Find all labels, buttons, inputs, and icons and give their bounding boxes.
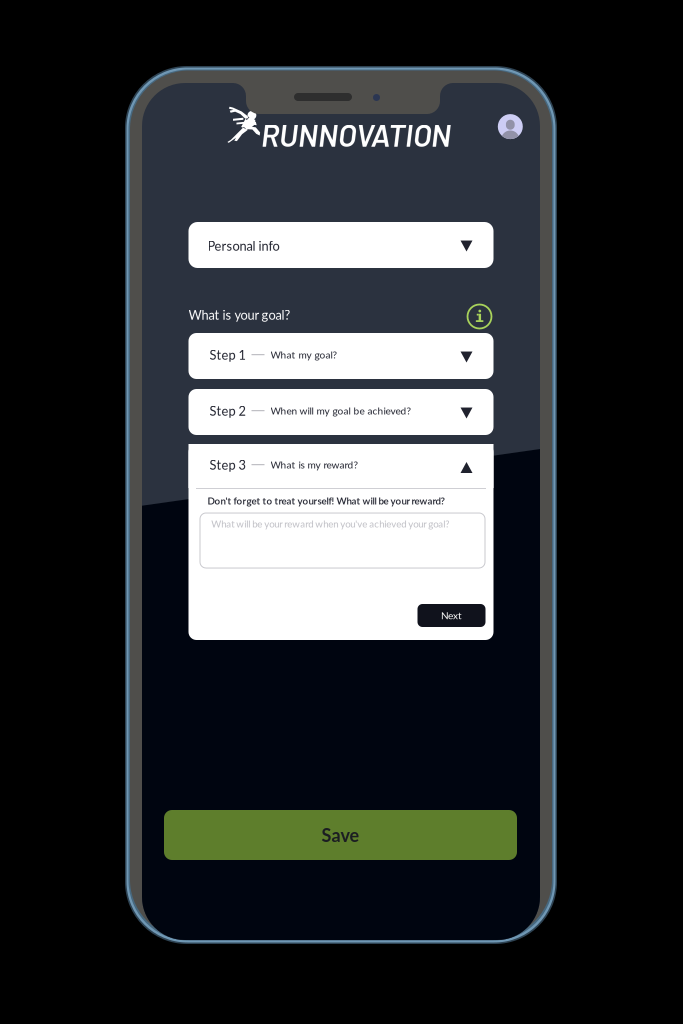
staticText: Step 2: [209, 403, 245, 418]
staticText: Save: [321, 824, 359, 846]
staticText: Don't forget to treat yourself! What wil…: [208, 495, 445, 507]
staticText: RUNNOVATION: [261, 116, 451, 153]
staticText: Step 1: [209, 347, 245, 362]
button[interactable]: Step 2: [188, 389, 493, 435]
staticText: What my goal?: [270, 349, 337, 361]
button[interactable]: Save: [164, 810, 517, 860]
staticText: Step 3: [209, 457, 245, 472]
button[interactable]: Step 1: [188, 333, 493, 379]
staticText: When will my goal be achieved?: [270, 405, 411, 417]
staticText: What is my reward?: [270, 459, 358, 471]
button[interactable]: Step 3: [188, 444, 493, 488]
staticText: Next: [441, 609, 462, 621]
staticText: What will be your reward when you've ach…: [211, 518, 449, 530]
button[interactable]: Account: [495, 111, 526, 142]
staticText: What is your goal?: [188, 307, 290, 322]
staticText: Personal info: [207, 238, 279, 253]
button[interactable]: Next: [417, 604, 485, 627]
button[interactable]: Goal information: [464, 301, 494, 331]
button[interactable]: Personal info: [188, 222, 493, 268]
